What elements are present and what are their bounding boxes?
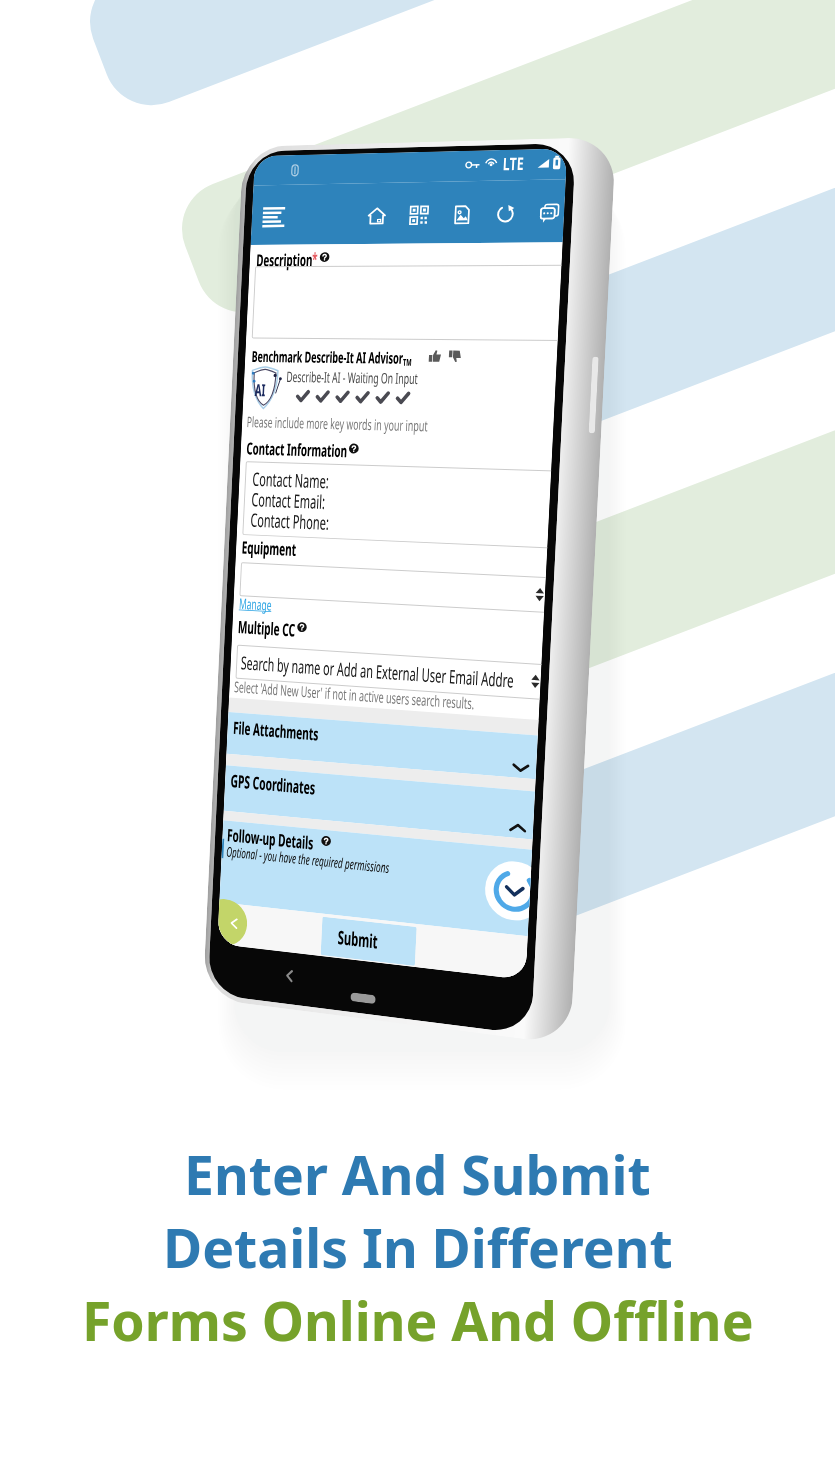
- staticText: Manage: [239, 593, 272, 615]
- staticText: AI: [254, 378, 266, 401]
- button[interactable]: Chat: [538, 202, 562, 225]
- staticText: Description: [256, 248, 313, 271]
- staticText: Forms Online And Offline: [82, 1284, 754, 1357]
- button[interactable]: Scan QR code: [408, 204, 430, 226]
- staticText: Contact Phone:: [250, 507, 330, 536]
- staticText: Contact Email:: [251, 487, 326, 515]
- staticText: Please include more key words in your in…: [246, 411, 428, 435]
- staticText: File Attachments: [233, 715, 319, 745]
- button[interactable]: Search by name or Add an External User E…: [235, 645, 541, 700]
- staticText: *: [312, 247, 318, 270]
- staticText: Details In Different: [163, 1211, 673, 1284]
- staticText: Optional - you have the required permiss…: [226, 842, 390, 877]
- button[interactable]: File Attachments: [226, 712, 538, 779]
- button[interactable]: Menu: [259, 200, 288, 230]
- staticText: Benchmark Describe-It AI Advisor: [251, 346, 404, 369]
- button[interactable]: Photos: [450, 203, 473, 226]
- button[interactable]: [239, 562, 546, 613]
- staticText: Search by name or Add an External User E…: [240, 650, 514, 693]
- button[interactable]: Submit: [321, 917, 417, 966]
- staticText: Describe-It AI - Waiting On Input: [286, 366, 418, 388]
- staticText: GPS Coordinates: [230, 769, 316, 800]
- staticText: Follow-up Details: [227, 823, 314, 854]
- staticText: Multiple CC: [237, 615, 296, 641]
- button[interactable]: Home: [366, 205, 388, 227]
- staticText: Select 'Add New User' if not in active u…: [234, 677, 475, 714]
- button[interactable]: Refresh: [494, 203, 517, 225]
- staticText: TM: [403, 356, 412, 369]
- button[interactable]: Manage: [239, 593, 293, 616]
- button[interactable]: Back: [217, 898, 248, 947]
- staticText: LTE: [502, 151, 525, 175]
- staticText: Contact Information: [246, 437, 348, 462]
- staticText: Submit: [337, 924, 379, 955]
- button[interactable]: GPS Coordinates: [224, 765, 535, 839]
- staticText: Enter And Submit: [184, 1138, 651, 1211]
- staticText: Equipment: [241, 535, 297, 561]
- staticText: Contact Name:: [252, 466, 330, 494]
